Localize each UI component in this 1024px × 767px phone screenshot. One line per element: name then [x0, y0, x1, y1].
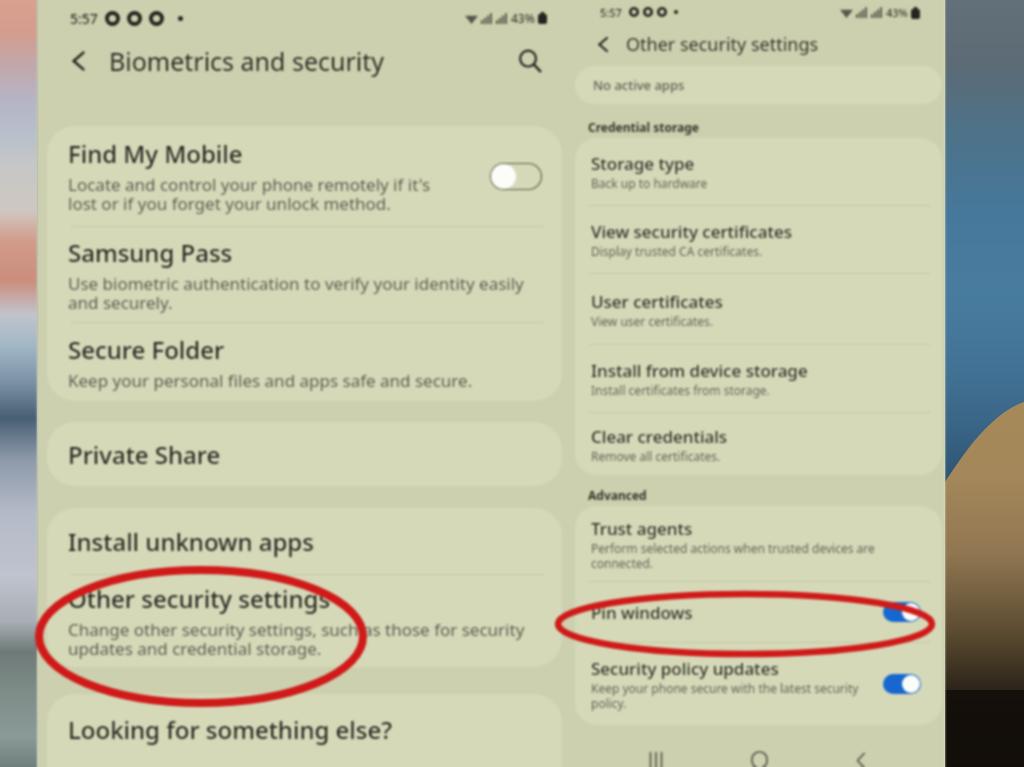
- button[interactable]: Home: [741, 749, 777, 767]
- button[interactable]: Secure Folder: [47, 323, 562, 401]
- button[interactable]: Find My Mobile toggle: [490, 163, 542, 190]
- button[interactable]: Search: [513, 44, 547, 78]
- staticText: 5:57: [600, 5, 622, 20]
- button[interactable]: Samsung Pass: [47, 227, 562, 322]
- button[interactable]: Security policy updates toggle: [883, 674, 921, 694]
- staticText: Biometrics and security: [109, 44, 385, 78]
- staticText: User certificates: [591, 290, 723, 313]
- staticText: View user certificates.: [591, 313, 714, 329]
- button[interactable]: Back: [590, 31, 616, 57]
- staticText: No active apps: [593, 76, 685, 94]
- staticText: Install unknown apps: [68, 525, 314, 558]
- button[interactable]: Storage type: [575, 138, 942, 205]
- staticText: Install certificates from storage.: [591, 382, 770, 398]
- button[interactable]: Back: [63, 45, 95, 77]
- button[interactable]: User certificates: [575, 274, 942, 344]
- staticText: Locate and control your phone remotely i…: [68, 173, 431, 215]
- staticText: 43%: [511, 10, 535, 26]
- staticText: Private Share: [68, 438, 221, 471]
- staticText: Credential storage: [588, 119, 700, 135]
- staticText: Perform selected actions when trusted de…: [591, 540, 875, 571]
- button[interactable]: Recent apps: [638, 749, 674, 767]
- staticText: Install from device storage: [591, 359, 808, 382]
- staticText: Trust agents: [591, 517, 693, 540]
- staticText: View security certificates: [591, 220, 792, 243]
- staticText: 43%: [886, 5, 908, 20]
- button[interactable]: Pin windows: [575, 582, 942, 642]
- staticText: Samsung Pass: [68, 236, 233, 269]
- button[interactable]: Trust agents: [575, 506, 942, 581]
- button[interactable]: View security certificates: [575, 206, 942, 273]
- staticText: 5:57: [70, 9, 98, 28]
- button[interactable]: Looking for something else?: [47, 694, 562, 764]
- staticText: Keep your personal files and apps safe a…: [68, 369, 473, 392]
- staticText: Other security settings: [68, 582, 331, 615]
- staticText: Display trusted CA certificates.: [591, 243, 763, 259]
- button[interactable]: Back: [843, 749, 879, 767]
- staticText: Storage type: [591, 152, 695, 175]
- button[interactable]: Install from device storage: [575, 345, 942, 412]
- staticText: Secure Folder: [68, 333, 225, 366]
- staticText: Advanced: [588, 487, 647, 503]
- staticText: Looking for something else?: [68, 713, 392, 746]
- button[interactable]: Find My Mobile: [47, 126, 562, 226]
- button[interactable]: Security policy updates: [575, 643, 942, 725]
- staticText: Clear credentials: [591, 425, 728, 448]
- button[interactable]: Clear credentials: [575, 413, 942, 475]
- staticText: Back up to hardware: [591, 175, 708, 191]
- staticText: Keep your phone secure with the latest s…: [591, 680, 859, 711]
- staticText: Other security settings: [626, 32, 819, 57]
- button[interactable]: Pin windows toggle: [883, 602, 921, 622]
- button[interactable]: Private Share: [47, 422, 562, 486]
- button[interactable]: Install unknown apps: [47, 508, 562, 574]
- staticText: Use biometric authentication to verify y…: [68, 272, 524, 314]
- staticText: Remove all certificates.: [591, 448, 721, 464]
- staticText: Pin windows: [591, 601, 693, 624]
- staticText: Find My Mobile: [68, 137, 243, 170]
- staticText: Change other security settings, such as …: [68, 618, 525, 660]
- button[interactable]: Other security settings: [47, 575, 562, 667]
- staticText: Security policy updates: [591, 657, 779, 680]
